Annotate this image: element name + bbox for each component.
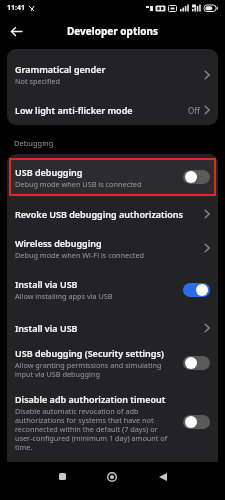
button[interactable] <box>11 27 22 36</box>
staticText: Allow granting permissions and simulatin… <box>15 360 162 379</box>
button[interactable] <box>145 463 181 491</box>
staticText: Not specified <box>15 76 60 86</box>
staticText: Developer options <box>67 24 159 38</box>
button[interactable]: USB debugging (Security settings) <box>7 344 218 382</box>
staticText: Debug mode when USB is connected <box>15 179 142 189</box>
staticText: Allow installing apps via USB <box>15 291 113 301</box>
button[interactable]: Low light anti-flicker mode <box>7 95 218 125</box>
button[interactable] <box>183 283 210 297</box>
button[interactable] <box>183 170 210 184</box>
button[interactable]: Install via USB <box>7 267 218 312</box>
staticText: Disable adb authorization timeout <box>15 393 166 405</box>
button[interactable] <box>183 356 210 370</box>
staticText: Revoke USB debugging authorizations <box>15 208 183 220</box>
staticText: USB debugging <box>15 166 83 178</box>
button[interactable] <box>95 463 129 491</box>
button[interactable] <box>183 415 210 429</box>
staticText: Debugging <box>14 138 54 148</box>
button[interactable] <box>45 462 80 491</box>
staticText: Wireless debugging <box>15 237 102 249</box>
staticText: Install via USB <box>15 278 78 290</box>
staticText: 11:41 <box>7 3 25 13</box>
staticText: Disable automatic revocation of adb auth… <box>15 406 168 452</box>
staticText: USB debugging (Security settings) <box>15 347 164 359</box>
staticText: Off <box>188 105 200 116</box>
button[interactable]: Wireless debugging <box>7 229 218 267</box>
staticText: Install via USB <box>15 322 78 334</box>
button[interactable]: USB debugging <box>9 158 216 196</box>
staticText: Grammatical gender <box>15 63 106 75</box>
button[interactable]: Install via USB <box>7 312 218 344</box>
staticText: Debug mode when Wi-Fi is connected <box>15 250 144 260</box>
staticText: Low light anti-flicker mode <box>15 104 133 116</box>
button[interactable]: Revoke USB debugging authorizations <box>7 199 218 229</box>
button[interactable]: Grammatical gender <box>7 54 218 95</box>
button[interactable]: Disable adb authorization timeout <box>7 382 218 462</box>
